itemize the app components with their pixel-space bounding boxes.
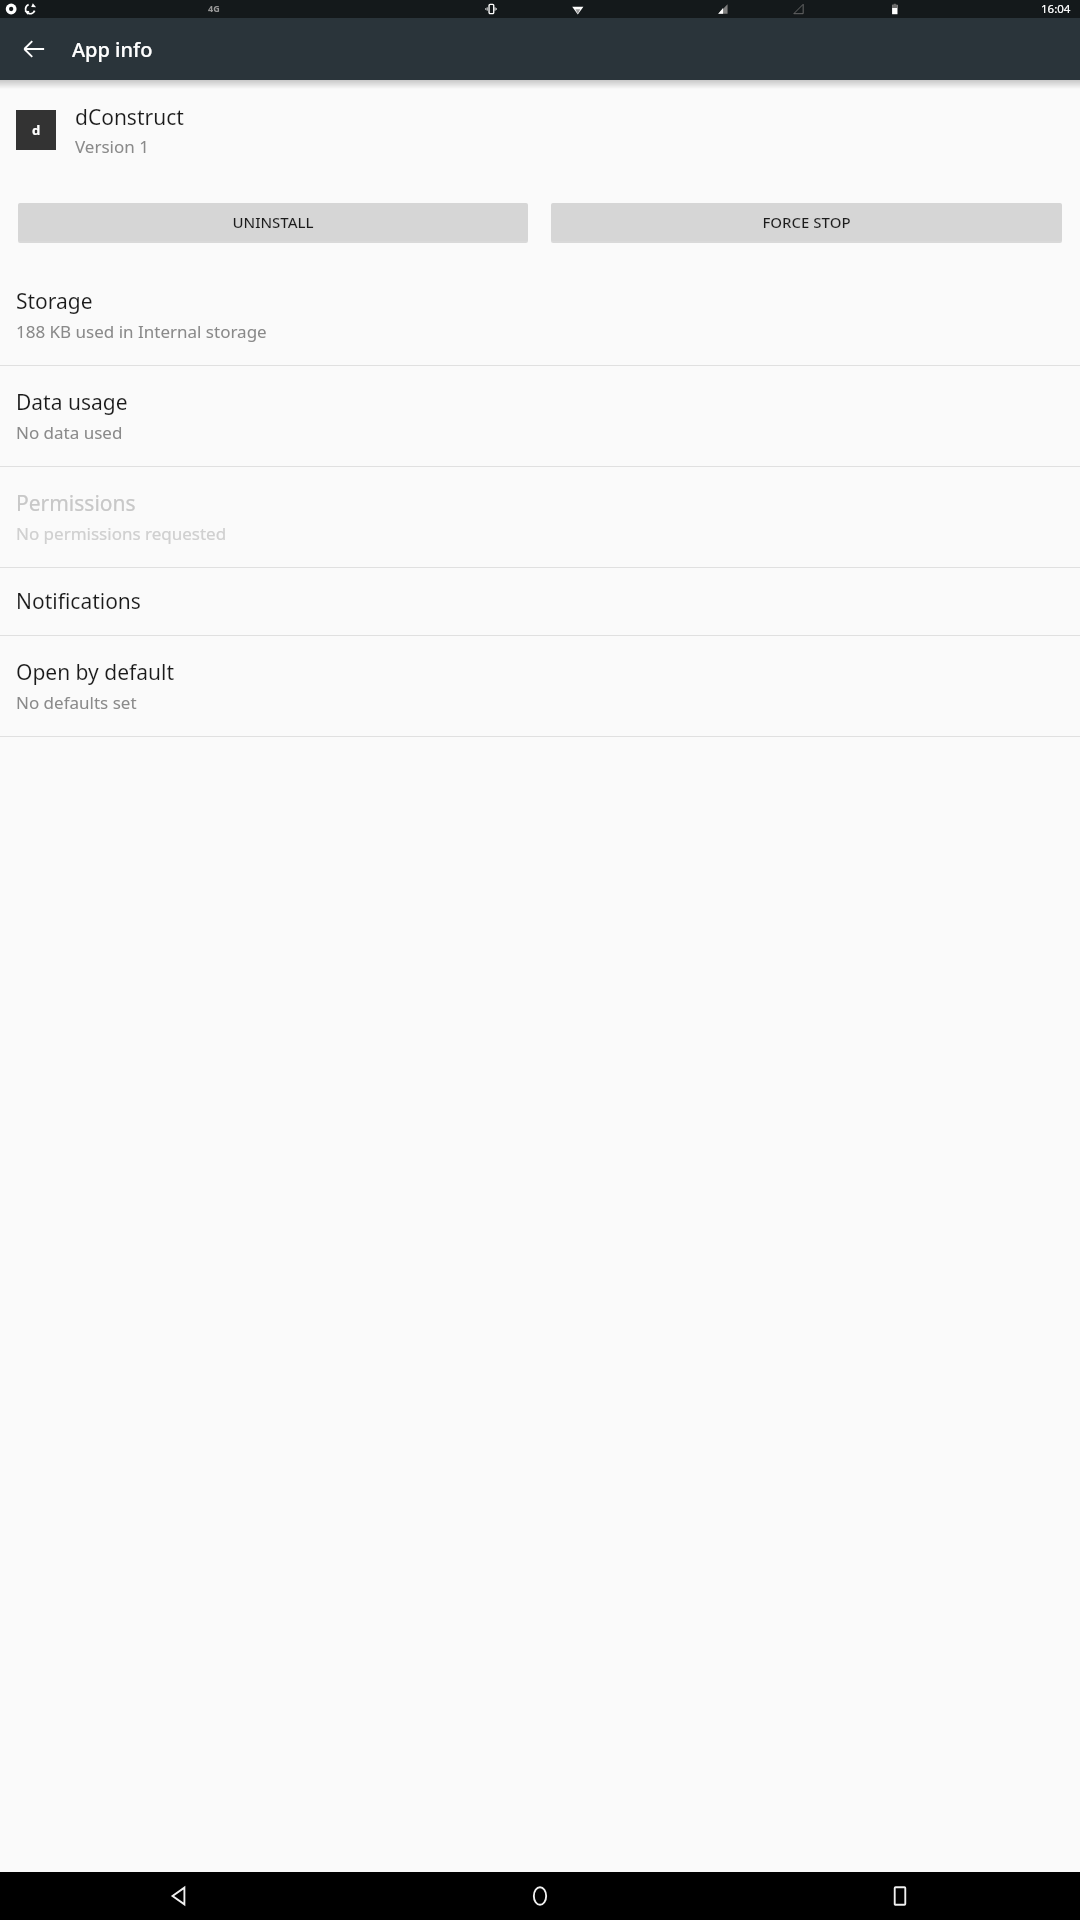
button[interactable]: Open by default xyxy=(0,636,1080,736)
staticText: Notifications xyxy=(16,587,141,616)
staticText: FORCE STOP xyxy=(762,212,851,232)
button[interactable]: Data usage xyxy=(0,366,1080,466)
button[interactable]: Home xyxy=(360,1872,720,1920)
button[interactable]: FORCE STOP xyxy=(551,203,1062,241)
staticText: d xyxy=(32,121,41,139)
staticText: 4G xyxy=(208,2,220,14)
staticText: Data usage xyxy=(16,388,128,417)
staticText: 16:04 xyxy=(1041,1,1071,17)
button[interactable]: Back xyxy=(10,25,58,73)
staticText: 188 KB used in Internal storage xyxy=(16,320,267,343)
staticText: UNINSTALL xyxy=(232,212,314,232)
staticText: No permissions requested xyxy=(16,522,227,545)
staticText: App info xyxy=(72,36,153,63)
button[interactable]: d xyxy=(0,89,1080,171)
button[interactable]: Permissions xyxy=(0,467,1080,567)
button[interactable]: Notifications xyxy=(0,568,1080,635)
staticText: Version 1 xyxy=(75,135,149,158)
button[interactable]: Storage xyxy=(0,265,1080,365)
staticText: No defaults set xyxy=(16,691,137,714)
staticText: Permissions xyxy=(16,489,136,518)
button[interactable]: Back xyxy=(0,1872,360,1920)
staticText: dConstruct xyxy=(75,103,184,132)
staticText: Open by default xyxy=(16,658,175,687)
button[interactable]: Recent apps xyxy=(720,1872,1080,1920)
button[interactable]: UNINSTALL xyxy=(18,203,528,241)
staticText: No data used xyxy=(16,421,123,444)
staticText: Storage xyxy=(16,287,93,316)
